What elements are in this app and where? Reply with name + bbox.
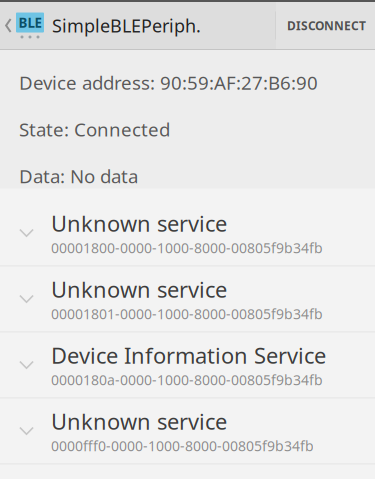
button[interactable]: DISCONNECT: [276, 2, 375, 49]
button[interactable]: Back: [0, 2, 44, 49]
staticText: DISCONNECT: [287, 17, 366, 33]
staticText: Device Information Service: [51, 340, 326, 370]
staticText: BLE: [18, 14, 41, 31]
button[interactable]: Unknown service: [0, 200, 375, 266]
staticText: 0000fff0-0000-1000-8000-00805f9b34fb: [51, 436, 314, 455]
staticText: Device address: 90:59:AF:27:B6:90: [19, 70, 318, 95]
staticText: 00001800-0000-1000-8000-00805f9b34fb: [51, 238, 323, 257]
staticText: Unknown service: [51, 274, 227, 304]
staticText: State: Connected: [19, 117, 170, 142]
staticText: Unknown service: [51, 208, 227, 238]
button[interactable]: Unknown service: [0, 398, 375, 464]
staticText: Unknown service: [51, 406, 227, 436]
staticText: Data: No data: [19, 164, 138, 188]
button[interactable]: Device Information Service: [0, 332, 375, 398]
staticText: 00001801-0000-1000-8000-00805f9b34fb: [51, 304, 323, 323]
button[interactable]: Unknown service: [0, 266, 375, 332]
staticText: 0000180a-0000-1000-8000-00805f9b34fb: [51, 370, 323, 389]
staticText: SimpleBLEPeriph.: [52, 13, 201, 38]
